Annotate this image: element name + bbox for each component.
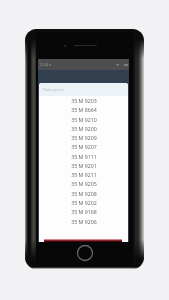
button[interactable]: 35 M 9205 <box>39 179 128 188</box>
button[interactable]: 35 M 9202 <box>39 198 128 207</box>
button[interactable]: 35 M 9111 <box>39 152 128 161</box>
staticText: 35 M 9206 <box>71 218 97 225</box>
button[interactable]: 35 M 9210 <box>39 115 128 124</box>
staticText: 35 M 9201 <box>71 162 97 169</box>
staticText: 35 M 9210 <box>71 116 97 123</box>
staticText: 35 M 9211 <box>71 171 97 178</box>
staticText: 35 M 9205 <box>71 180 97 187</box>
button[interactable]: 35 M 9209 <box>39 133 128 142</box>
button[interactable]: 35 M 8664 <box>39 105 128 114</box>
button[interactable]: 35 M 9206 <box>39 217 128 226</box>
staticText: 35 M 8664 <box>71 106 97 113</box>
button[interactable]: 35 M 9201 <box>39 161 128 170</box>
staticText: Plaka giriniz <box>43 87 64 92</box>
button[interactable]: 35 M 9200 <box>39 124 128 133</box>
button[interactable]: Home <box>76 244 94 262</box>
staticText: 35 M 9202 <box>71 199 97 206</box>
button[interactable]: Plaka giriniz <box>39 83 128 96</box>
button[interactable]: 35 M 9207 <box>39 142 128 151</box>
staticText: 35 M 9203 <box>71 97 97 104</box>
staticText: 35 M 9207 <box>71 143 97 150</box>
staticText: 35 M 9168 <box>71 208 97 215</box>
staticText: 35 M 9200 <box>71 125 97 132</box>
button[interactable]: 35 M 9208 <box>39 189 128 198</box>
staticText: 35 M 9209 <box>71 134 97 141</box>
staticText: 35 M 9111 <box>71 153 97 160</box>
staticText: 35 M 9208 <box>71 190 97 197</box>
button[interactable]: 35 M 9168 <box>39 207 128 216</box>
staticText: 2:24 <box>40 62 48 67</box>
button[interactable]: 35 M 9203 <box>39 96 128 105</box>
button[interactable]: 35 M 9211 <box>39 170 128 179</box>
